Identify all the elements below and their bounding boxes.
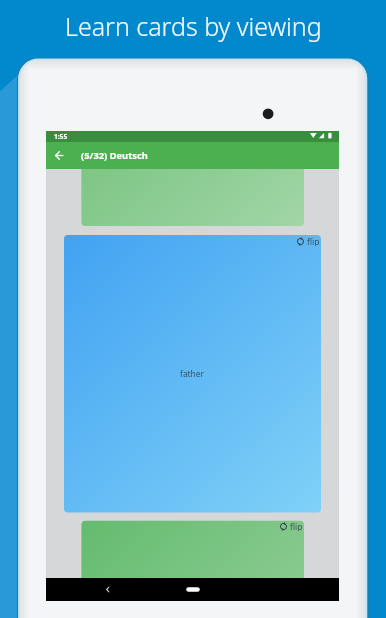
button[interactable]: flip bbox=[296, 236, 320, 246]
staticText: flip bbox=[290, 521, 303, 531]
staticText: 1:55 bbox=[54, 132, 68, 141]
staticText: Learn cards by viewing bbox=[65, 9, 322, 43]
button[interactable]: flip bbox=[279, 521, 303, 531]
button[interactable]: Back bbox=[46, 142, 73, 169]
staticText: flip bbox=[307, 236, 320, 246]
staticText: (5/32) Deutsch bbox=[81, 149, 148, 162]
staticText: father bbox=[180, 368, 205, 379]
